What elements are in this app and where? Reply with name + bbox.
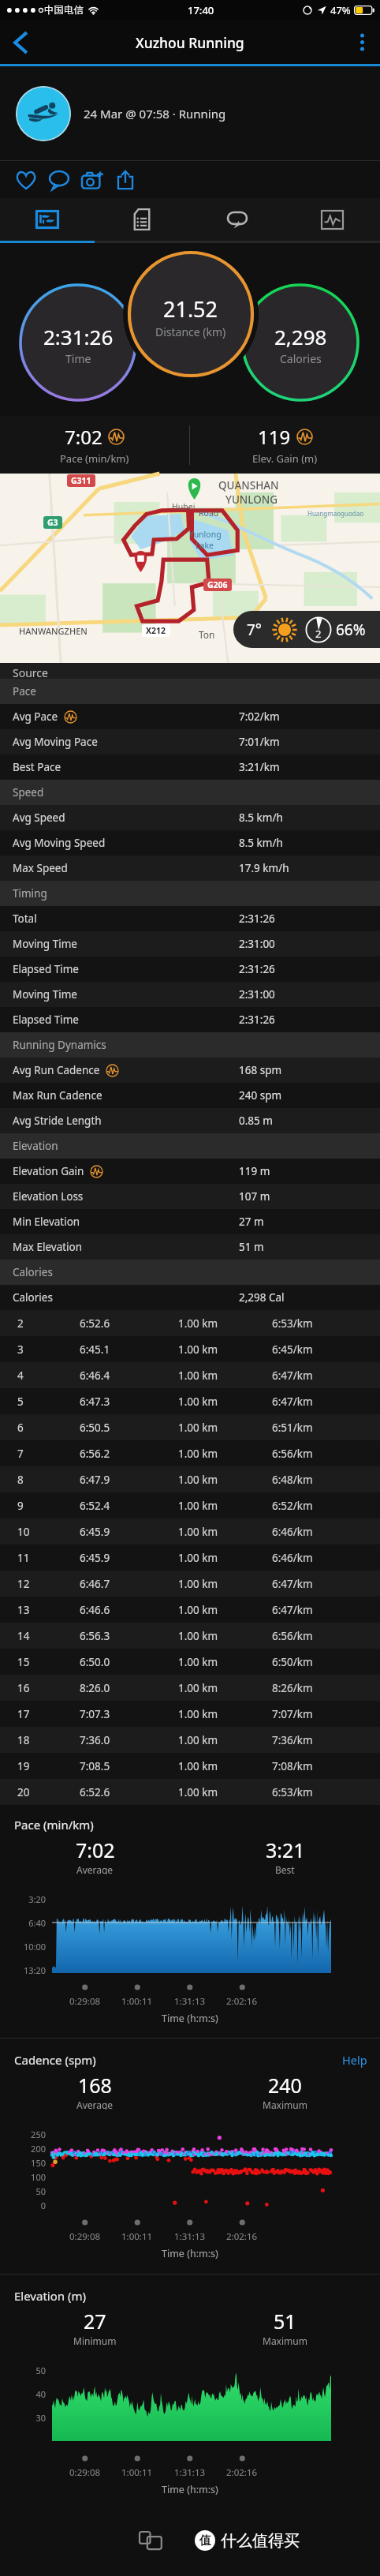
staticText: Calories [13, 1290, 53, 1305]
staticText: 20 [17, 1785, 30, 1799]
button[interactable]: Avg Stride Length [0, 1108, 380, 1133]
staticText: 18 [17, 1733, 30, 1747]
button[interactable]: 20 [0, 1779, 380, 1805]
button[interactable]: 8 [0, 1466, 380, 1492]
staticText: 6:45.9 [80, 1551, 110, 1565]
staticText: Pace (min/km) [14, 1817, 94, 1833]
staticText: 2:02:16 [226, 2466, 258, 2479]
staticText: 15 [17, 1655, 30, 1669]
staticText: 1.00 km [178, 1759, 218, 1773]
button[interactable]: Elapsed Time [0, 1007, 380, 1032]
staticText: 6:52.6 [80, 1785, 110, 1799]
staticText: 1.00 km [178, 1525, 218, 1539]
button[interactable]: 3 [0, 1336, 380, 1362]
button[interactable]: Map [0, 198, 95, 241]
button[interactable]: Elapsed Time [0, 957, 380, 982]
staticText: Elev. Gain (m) [252, 451, 318, 466]
button[interactable]: Avg Moving Speed [0, 830, 380, 856]
staticText: 8.5 km/h [239, 836, 283, 850]
button[interactable]: Back [0, 21, 41, 64]
staticText: 1.00 km [178, 1707, 218, 1721]
button[interactable]: Details [95, 198, 189, 241]
button[interactable]: Max Speed [0, 856, 380, 881]
button[interactable]: Laps [189, 198, 285, 241]
button[interactable]: Max Elevation [0, 1234, 380, 1260]
button[interactable]: Calories [0, 1285, 380, 1310]
button[interactable]: Comment [43, 163, 76, 197]
staticText: 51 [274, 2308, 296, 2334]
button[interactable]: 18 [0, 1727, 380, 1753]
staticText: 6 [17, 1421, 24, 1435]
staticText: 6:47.9 [80, 1473, 110, 1487]
staticText: 6:46.7 [80, 1577, 110, 1591]
button[interactable]: Avg Pace [0, 704, 380, 729]
staticText: Avg Run Cadence [13, 1063, 100, 1077]
button[interactable]: 7:02 [0, 416, 189, 474]
staticText: G3 [47, 517, 58, 528]
button[interactable]: 13 [0, 1597, 380, 1623]
button[interactable]: Avg Speed [0, 805, 380, 830]
staticText: 0 [11, 2200, 46, 2211]
staticText: 2:31:00 [239, 987, 275, 1002]
staticText: 24 Mar @ 07:58 · Running [84, 106, 226, 122]
button[interactable]: Add photo [76, 163, 109, 197]
staticText: 6:50.0 [80, 1655, 110, 1669]
button[interactable]: Help [342, 2052, 367, 2068]
staticText: 6:52.4 [80, 1499, 110, 1513]
staticText: Avg Stride Length [13, 1114, 102, 1128]
staticText: Moving Time [13, 987, 77, 1002]
button[interactable]: 16 [0, 1675, 380, 1701]
staticText: 168 [78, 2072, 112, 2099]
button[interactable]: 7° [233, 611, 380, 648]
button[interactable]: 14 [0, 1623, 380, 1649]
staticText: 1:31:13 [174, 2230, 206, 2243]
button[interactable]: 10 [0, 1518, 380, 1544]
staticText: 1.00 km [178, 1681, 218, 1695]
button[interactable]: 11 [0, 1544, 380, 1571]
staticText: QUANSHAN [218, 478, 279, 492]
button[interactable]: Share [109, 163, 142, 197]
staticText: Moving Time [13, 937, 77, 951]
staticText: 6:53/km [272, 1316, 313, 1331]
button[interactable]: Avg Moving Pace [0, 729, 380, 754]
staticText: 11 [17, 1551, 30, 1565]
button[interactable]: Moving Time [0, 931, 380, 957]
button[interactable]: More options [344, 21, 380, 64]
button[interactable]: 15 [0, 1649, 380, 1675]
button[interactable]: Avg Run Cadence [0, 1058, 380, 1083]
staticText: Elevation (m) [14, 2288, 86, 2304]
staticText: 6:40 [11, 1917, 46, 1929]
button[interactable]: 2 [0, 1310, 380, 1336]
button[interactable]: 7 [0, 1440, 380, 1466]
staticText: 6:45.1 [80, 1342, 110, 1357]
staticText: 6:45.9 [80, 1525, 110, 1539]
button[interactable]: 9 [0, 1492, 380, 1518]
button[interactable]: 17 [0, 1701, 380, 1727]
staticText: HANWANGZHEN [19, 625, 88, 637]
button[interactable]: Total [0, 906, 380, 931]
staticText: Avg Speed [13, 811, 65, 825]
button[interactable]: Compare [133, 2523, 168, 2558]
button[interactable]: 4 [0, 1362, 380, 1388]
button[interactable]: Max Run Cadence [0, 1083, 380, 1108]
button[interactable]: Like [9, 163, 43, 197]
staticText: 1.00 km [178, 1655, 218, 1669]
button[interactable]: Moving Time [0, 982, 380, 1007]
button[interactable]: 12 [0, 1571, 380, 1597]
staticText: Avg Pace [13, 710, 58, 724]
button[interactable]: 6 [0, 1414, 380, 1440]
staticText: 1:31:13 [174, 1995, 206, 2008]
button[interactable]: 5 [0, 1388, 380, 1414]
staticText: 2:31:26 [239, 962, 275, 976]
button[interactable]: 119 [190, 416, 380, 474]
button[interactable]: Elevation Gain [0, 1159, 380, 1184]
button[interactable]: Best Pace [0, 754, 380, 780]
button[interactable]: 19 [0, 1753, 380, 1779]
button[interactable]: Charts [285, 198, 380, 241]
staticText: 6:46.6 [80, 1603, 110, 1617]
staticText: Maximum [263, 2099, 307, 2110]
button[interactable]: Min Elevation [0, 1209, 380, 1234]
button[interactable]: Elevation Loss [0, 1184, 380, 1209]
staticText: 0:29:08 [69, 2466, 101, 2479]
staticText: 7:08.5 [80, 1759, 110, 1773]
